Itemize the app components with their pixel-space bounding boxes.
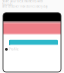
staticText: and discover new stories every day [2, 5, 47, 8]
staticText: Share your best moments with friends [2, 0, 43, 6]
staticText: Profile [9, 48, 19, 51]
